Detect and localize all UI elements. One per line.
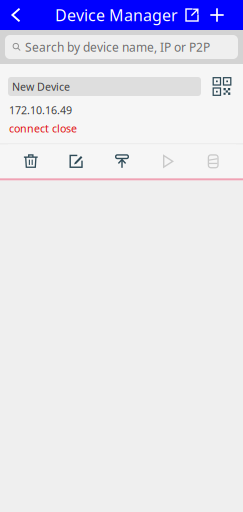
staticText: connect close — [9, 121, 77, 135]
staticText: Device Manager — [55, 4, 178, 26]
button[interactable]: Push — [99, 144, 145, 178]
button[interactable]: Edit — [54, 144, 99, 178]
button[interactable]: Open externally — [178, 0, 206, 30]
staticText: New Device — [12, 79, 70, 94]
button[interactable]: Add device — [202, 0, 232, 30]
button[interactable]: Search by device name, IP or P2P — [5, 35, 238, 59]
button[interactable]: Show QR code — [207, 76, 237, 97]
button[interactable]: Delete — [8, 144, 54, 178]
button[interactable]: Run — [145, 144, 190, 178]
button[interactable]: Database — [190, 144, 236, 178]
staticText: 172.10.16.49 — [9, 103, 72, 117]
button[interactable]: Back — [0, 0, 32, 30]
staticText: Search by device name, IP or P2P — [25, 39, 210, 55]
